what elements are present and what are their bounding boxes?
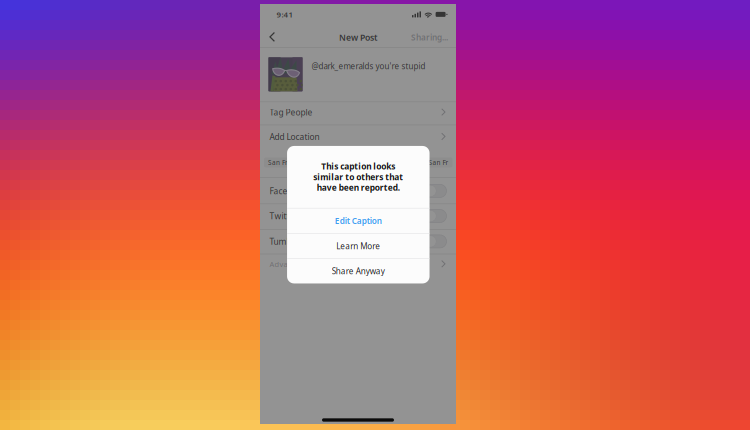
staticText: San Fr <box>428 158 448 167</box>
staticText: Advanced Settings <box>269 259 337 269</box>
button[interactable]: Tumblr <box>260 230 456 252</box>
button[interactable]: San Francisco <box>264 157 315 167</box>
staticText: Facebook <box>269 185 306 197</box>
staticText: Share Anyway <box>332 266 385 277</box>
staticText: Sharing... <box>411 32 448 43</box>
staticText: This caption looks <box>321 161 395 172</box>
button[interactable]: Share Anyway <box>287 259 430 283</box>
button[interactable]: Mission <box>388 157 420 167</box>
staticText: Twitter <box>269 210 297 222</box>
staticText: 9:41 <box>276 9 293 20</box>
button[interactable]: Advanced Settings <box>260 254 456 274</box>
staticText: Tag People <box>269 107 312 118</box>
staticText: have been reported. <box>317 182 400 193</box>
staticText: Add Location <box>269 131 319 142</box>
staticText: Learn More <box>336 240 380 252</box>
staticText: Mission <box>392 158 416 167</box>
button[interactable]: Add Location <box>260 126 456 148</box>
staticText: Golden Gate Park <box>323 158 379 167</box>
button[interactable]: Back <box>260 26 284 48</box>
staticText: New Post <box>339 31 378 43</box>
button[interactable]: Golden Gate Park <box>319 157 383 167</box>
button[interactable]: Learn More <box>287 234 430 258</box>
button[interactable]: San Fr <box>424 157 452 167</box>
staticText: San Francisco <box>268 158 311 167</box>
button[interactable]: Edit Caption <box>287 208 430 233</box>
button[interactable]: Twitter <box>260 205 456 227</box>
staticText: similar to others that <box>313 171 403 183</box>
button[interactable]: Facebook <box>260 180 456 202</box>
staticText: Edit Caption <box>335 215 382 226</box>
staticText: Tumblr <box>269 236 296 247</box>
button[interactable]: Tag People <box>260 101 456 123</box>
button[interactable]: Sharing... <box>400 26 448 48</box>
staticText: @dark_emeralds you're stupid <box>311 61 425 72</box>
